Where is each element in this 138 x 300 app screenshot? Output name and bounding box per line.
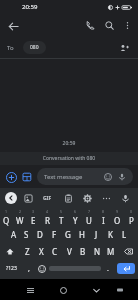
button[interactable]: Space — [49, 266, 101, 271]
staticText: E — [31, 215, 36, 226]
staticText: . — [107, 264, 109, 274]
button[interactable]: Hide keyboard — [89, 283, 103, 297]
button[interactable]: , — [23, 260, 35, 277]
button[interactable]: S — [20, 226, 33, 243]
staticText: V — [67, 246, 72, 257]
button[interactable]: 1 — [0, 208, 13, 226]
button[interactable]: J — [89, 226, 103, 243]
button[interactable]: F — [47, 226, 61, 243]
staticText: H — [79, 229, 85, 240]
button[interactable]: Z — [20, 243, 34, 260]
staticText: 080 — [30, 44, 39, 51]
button[interactable]: Voice input — [118, 191, 132, 205]
button[interactable]: 8 — [96, 208, 110, 226]
staticText: 2 — [19, 209, 22, 214]
staticText: Conversation with 080 — [0, 155, 138, 162]
button[interactable]: M — [104, 243, 118, 260]
staticText: T — [59, 215, 64, 226]
staticText: P — [129, 215, 134, 226]
button[interactable]: G — [61, 226, 75, 243]
staticText: W — [16, 215, 24, 226]
button[interactable]: . — [102, 260, 114, 277]
button[interactable]: Stickers — [19, 169, 35, 185]
staticText: B — [80, 246, 86, 257]
button[interactable]: Themes — [21, 191, 35, 205]
staticText: R — [45, 215, 50, 226]
button[interactable]: Home — [56, 283, 70, 297]
button[interactable]: 080 — [23, 41, 46, 54]
button[interactable]: 6 — [68, 208, 82, 226]
button[interactable]: C — [48, 243, 62, 260]
staticText: 5 — [60, 209, 63, 214]
staticText: O — [114, 215, 121, 226]
button[interactable]: 9 — [110, 208, 124, 226]
staticText: 3 — [32, 209, 35, 214]
button[interactable]: 5 — [54, 208, 68, 226]
button[interactable]: D — [33, 226, 47, 243]
staticText: 6 — [74, 209, 77, 214]
button[interactable]: Add attachment — [3, 169, 19, 185]
staticText: D — [37, 229, 43, 240]
button[interactable]: B — [76, 243, 90, 260]
button[interactable]: Expand toolbar — [5, 192, 17, 204]
button[interactable]: X — [34, 243, 48, 260]
button[interactable]: V — [62, 243, 76, 260]
staticText: 20:59 — [22, 3, 38, 11]
staticText: M — [107, 246, 115, 257]
button[interactable]: Add people — [116, 40, 132, 56]
staticText: ?123 — [6, 265, 17, 272]
button[interactable]: 2 — [13, 208, 26, 226]
staticText: Y — [73, 215, 78, 226]
staticText: G — [65, 229, 71, 240]
staticText: 9 — [116, 209, 119, 214]
button[interactable]: 4 — [40, 208, 54, 226]
staticText: Z — [25, 246, 30, 257]
staticText: Q — [3, 215, 10, 226]
button[interactable]: A — [7, 226, 20, 243]
staticText: J — [95, 229, 98, 240]
button[interactable]: ?123 — [0, 260, 23, 277]
button[interactable]: H — [75, 226, 89, 243]
staticText: S — [24, 229, 29, 240]
staticText: 7 — [88, 209, 91, 214]
button[interactable]: K — [103, 226, 117, 243]
staticText: , — [28, 264, 30, 274]
staticText: A — [11, 229, 17, 240]
other: Keyboard active — [114, 284, 126, 296]
staticText: N — [94, 246, 101, 257]
button[interactable]: Text message — [37, 168, 133, 185]
button[interactable]: 3 — [26, 208, 40, 226]
button[interactable]: L — [117, 226, 131, 243]
staticText: 1 — [5, 209, 8, 214]
staticText: F — [52, 229, 57, 240]
button[interactable]: Back — [3, 16, 23, 36]
staticText: To — [7, 44, 14, 52]
staticText: U — [86, 215, 92, 226]
button[interactable]: Shift — [0, 243, 20, 260]
button[interactable]: Enter — [117, 263, 135, 274]
staticText: I — [102, 215, 105, 226]
button[interactable]: Emoji — [35, 260, 48, 277]
button[interactable]: Call — [81, 16, 100, 35]
staticText: C — [52, 246, 58, 257]
button[interactable]: Search — [100, 16, 119, 35]
button[interactable]: Recent apps — [23, 283, 37, 297]
staticText: K — [108, 229, 113, 240]
staticText: GIF — [43, 195, 52, 202]
button[interactable]: Settings — [80, 191, 94, 205]
button[interactable]: More options — [119, 17, 136, 34]
staticText: 4 — [46, 209, 49, 214]
button[interactable]: 0 — [124, 208, 138, 226]
staticText: 8 — [102, 209, 105, 214]
staticText: L — [122, 229, 127, 240]
staticText: 0 — [130, 209, 133, 214]
button[interactable]: N — [90, 243, 104, 260]
staticText: X — [39, 246, 44, 257]
staticText: 20:59 — [0, 140, 138, 147]
button[interactable]: More — [99, 191, 113, 205]
staticText: Text message — [44, 173, 83, 181]
button[interactable]: Clipboard — [61, 191, 75, 205]
button[interactable]: 7 — [82, 208, 96, 226]
button[interactable]: GIF — [39, 191, 56, 205]
button[interactable]: Backspace — [118, 243, 138, 260]
